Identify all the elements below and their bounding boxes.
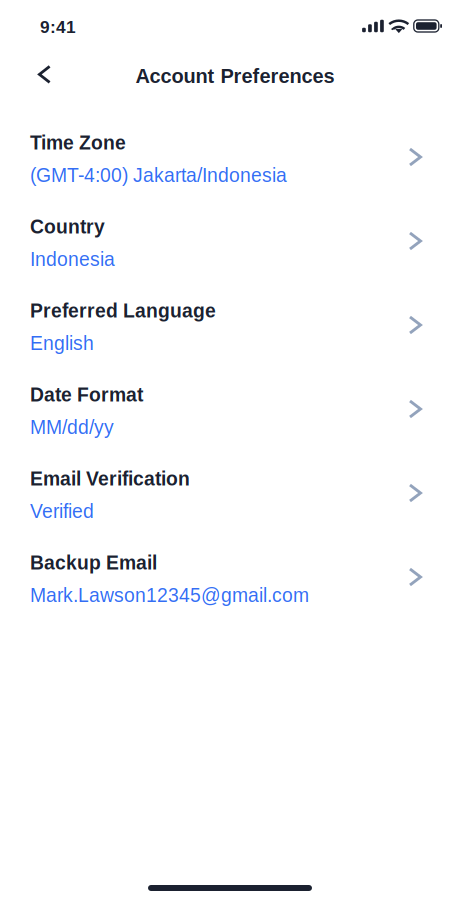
button[interactable]: Email Verification: [0, 453, 460, 537]
staticText: Account Preferences: [135, 65, 334, 87]
staticText: 9:41: [40, 17, 76, 37]
staticText: Time Zone: [30, 132, 126, 153]
staticText: Preferred Language: [30, 300, 216, 321]
button[interactable]: Country: [0, 201, 460, 285]
staticText: (GMT-4:00) Jakarta/Indonesia: [30, 164, 287, 186]
button[interactable]: Preferred Language: [0, 285, 460, 369]
staticText: Date Format: [30, 384, 143, 405]
staticText: Indonesia: [30, 248, 115, 270]
staticText: Backup Email: [30, 552, 157, 573]
staticText: Verified: [30, 500, 94, 522]
staticText: MM/dd/yy: [30, 416, 114, 438]
button[interactable]: Back: [0, 47, 73, 95]
button[interactable]: Time Zone: [0, 117, 460, 201]
button[interactable]: Date Format: [0, 369, 460, 453]
staticText: Mark.Lawson12345@gmail.com: [30, 584, 309, 606]
staticText: English: [30, 332, 94, 354]
staticText: Email Verification: [30, 468, 190, 489]
button[interactable]: Backup Email: [0, 537, 460, 621]
staticText: Country: [30, 216, 105, 237]
